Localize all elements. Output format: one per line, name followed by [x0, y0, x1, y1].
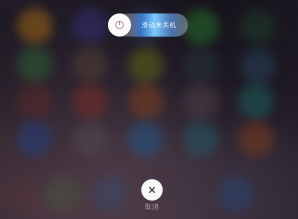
button[interactable]: 滑动来关机 [108, 13, 188, 36]
button[interactable]: 取消 [141, 179, 163, 211]
staticText: 取消 [145, 203, 159, 211]
staticText: 滑动来关机 [141, 21, 176, 29]
